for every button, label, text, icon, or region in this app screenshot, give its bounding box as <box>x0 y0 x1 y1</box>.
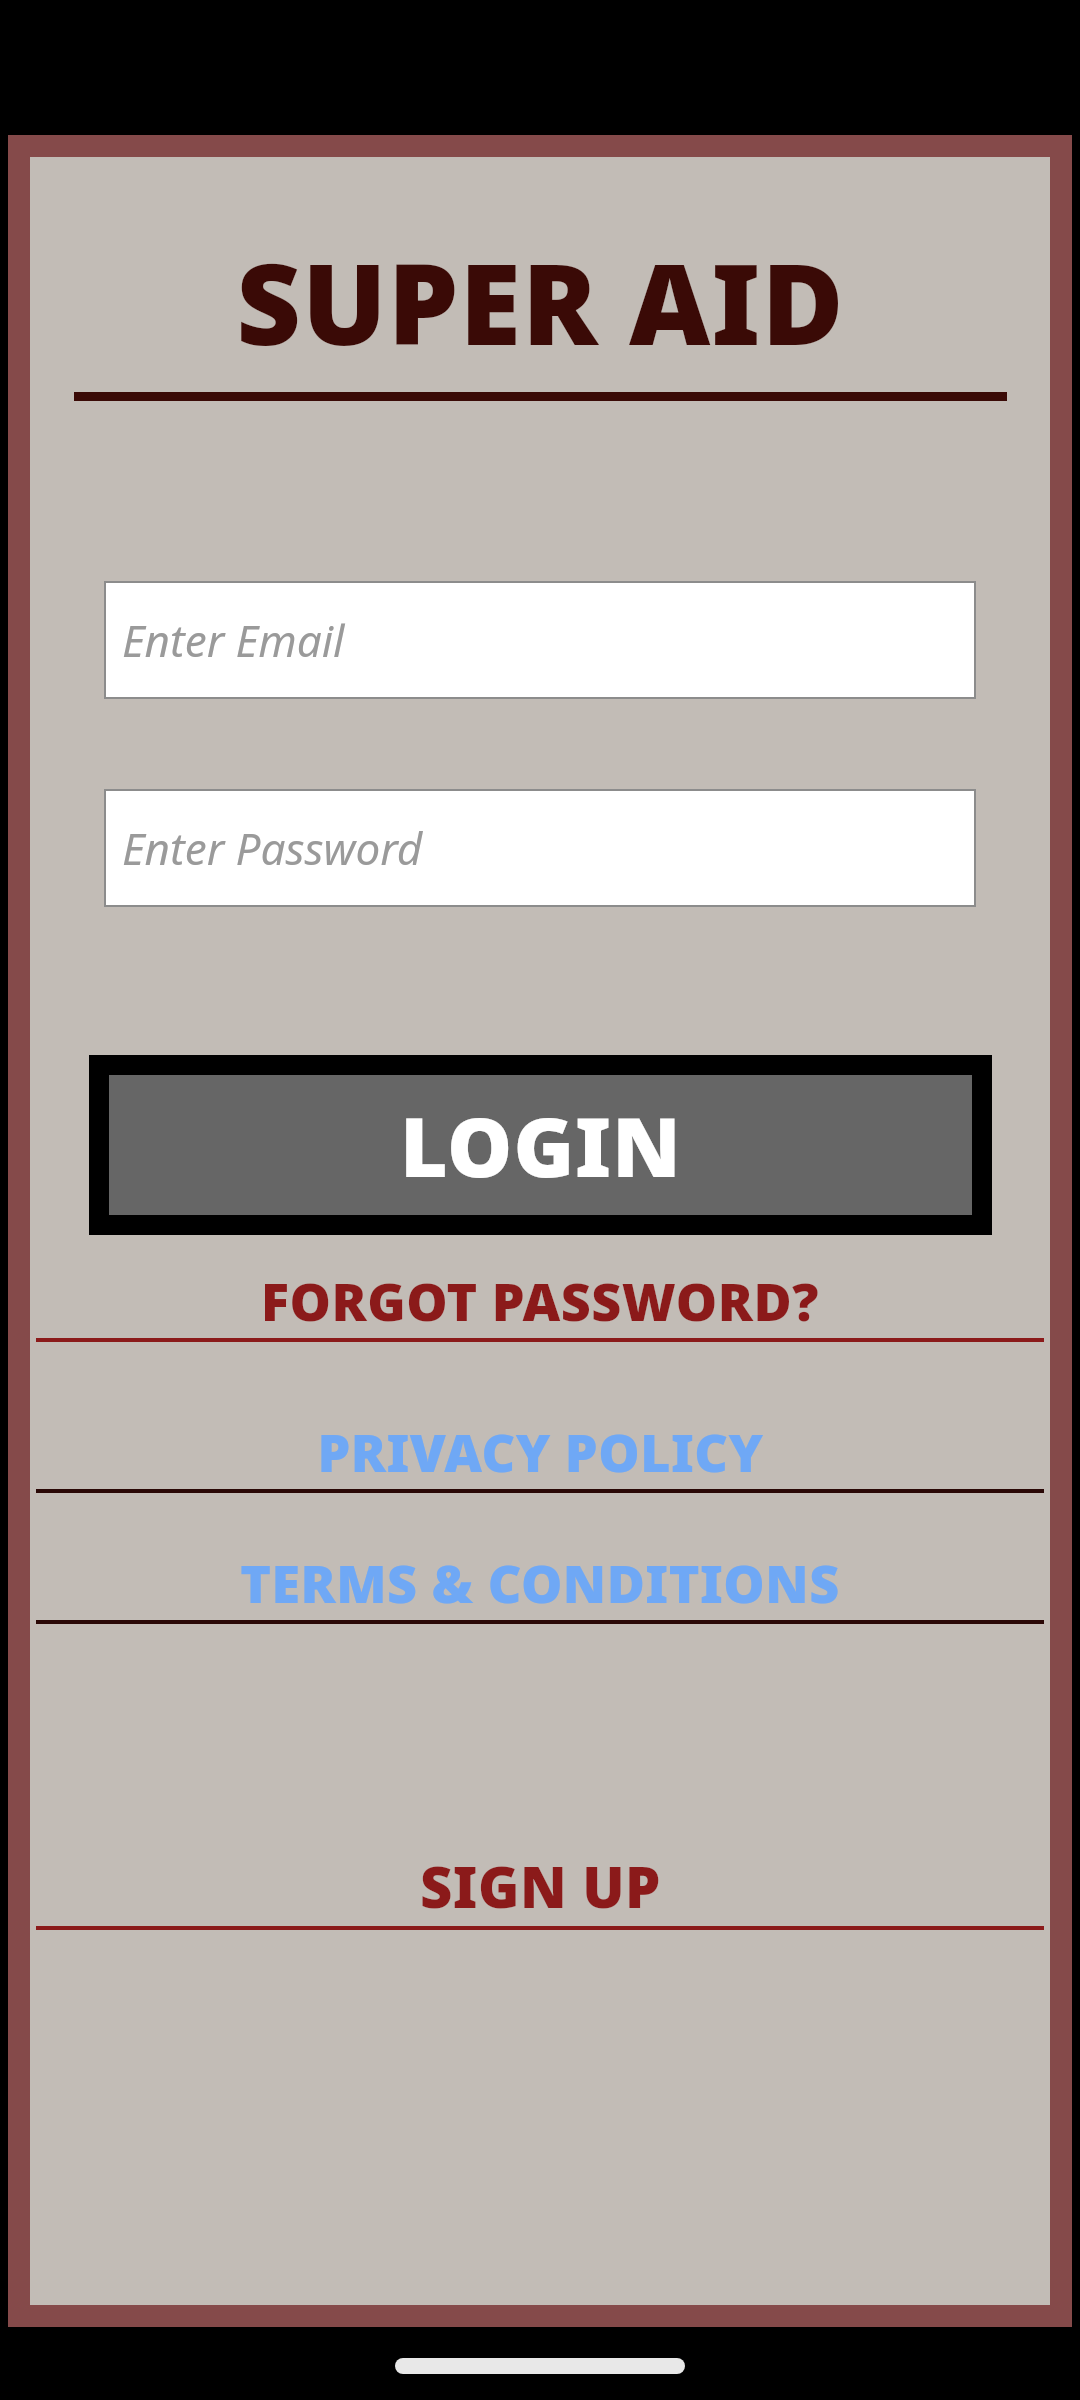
button[interactable]: LOGIN <box>89 1055 992 1235</box>
staticText: LOGIN <box>400 1089 682 1201</box>
staticText: Enter Password <box>122 818 423 878</box>
staticText: Enter Email <box>122 610 345 670</box>
button[interactable]: Enter Password <box>104 789 976 907</box>
button[interactable]: FORGOT PASSWORD? <box>30 1263 1050 1344</box>
button[interactable]: PRIVACY POLICY <box>30 1414 1050 1495</box>
staticText: SIGN UP <box>420 1848 661 1924</box>
button[interactable]: TERMS & CONDITIONS <box>30 1545 1050 1626</box>
staticText: FORGOT PASSWORD? <box>261 1265 819 1336</box>
staticText: SUPER AID <box>236 225 845 378</box>
staticText: PRIVACY POLICY <box>317 1416 764 1487</box>
button[interactable]: SIGN UP <box>30 1846 1050 1932</box>
button[interactable]: Enter Email <box>104 581 976 699</box>
staticText: TERMS & CONDITIONS <box>240 1547 840 1618</box>
